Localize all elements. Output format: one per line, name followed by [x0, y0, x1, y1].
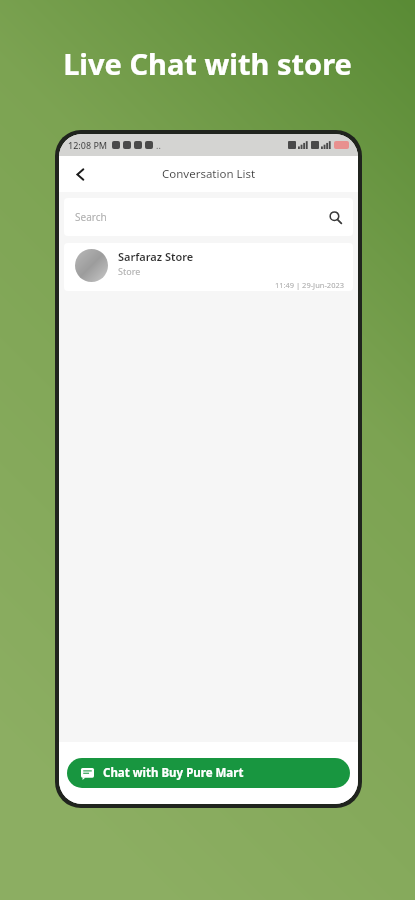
staticText: Chat with Buy Pure Mart	[103, 765, 244, 781]
staticText: 12:08 PM	[68, 139, 108, 151]
button[interactable]: Search	[64, 198, 353, 236]
button[interactable]: Chat with Buy Pure Mart	[67, 758, 350, 788]
staticText: Sarfaraz Store	[118, 249, 194, 264]
staticText: Search	[75, 210, 107, 224]
staticText: Conversation List	[162, 166, 256, 182]
button[interactable]: Back	[65, 159, 95, 189]
staticText: Live Chat with store	[0, 44, 415, 83]
button[interactable]: Sarfaraz Store	[64, 243, 353, 291]
staticText: ..	[156, 139, 161, 151]
staticText: Store	[118, 265, 141, 277]
staticText: 11:49 | 29-Jun-2023	[118, 280, 344, 290]
